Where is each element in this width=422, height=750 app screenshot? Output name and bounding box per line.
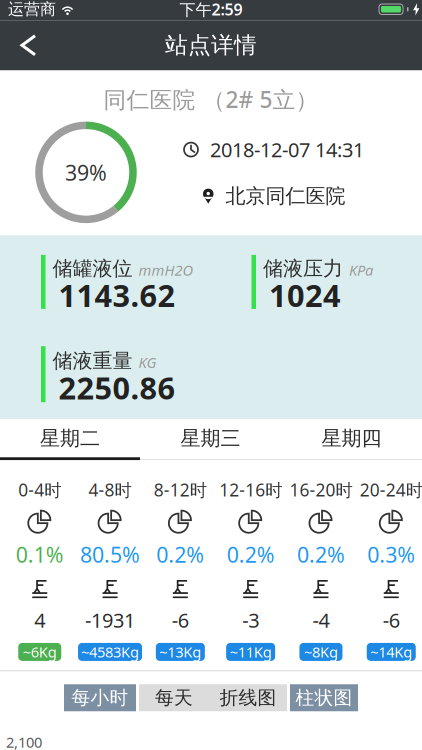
staticText: 星期四 <box>321 426 381 451</box>
staticText: -4 <box>312 607 329 633</box>
staticText: 80.5% <box>80 540 140 569</box>
staticText: 0.2% <box>297 540 345 569</box>
staticText: KG <box>138 353 156 372</box>
button[interactable]: 折线图 <box>209 684 287 711</box>
staticText: 16-20时 <box>289 478 352 501</box>
staticText: 20-24时 <box>360 478 422 501</box>
staticText: ~8Kg <box>304 642 338 662</box>
staticText: mmH2O <box>138 260 193 280</box>
staticText: 0.1% <box>16 540 64 569</box>
button[interactable]: 星期四 <box>281 419 422 457</box>
staticText: 2,100 <box>6 732 42 750</box>
staticText: 同仁医院 （2# 5立） <box>103 84 318 114</box>
staticText: 北京同仁医院 <box>225 184 345 208</box>
staticText: ~6Kg <box>23 642 57 662</box>
staticText: 运营商 <box>8 0 56 19</box>
staticText: 0.3% <box>367 540 415 569</box>
staticText: 站点详情 <box>165 31 257 59</box>
staticText: 0-4时 <box>18 478 61 501</box>
staticText: -1931 <box>85 607 135 633</box>
staticText: 1024 <box>269 275 341 315</box>
staticText: 1143.62 <box>58 275 175 315</box>
staticText: 储液重量 <box>52 349 132 373</box>
staticText: 0.2% <box>156 540 204 569</box>
button[interactable]: 柱状图 <box>290 684 358 711</box>
staticText: ~13Kg <box>159 642 201 662</box>
button[interactable]: 返回 <box>0 24 51 67</box>
button[interactable]: 星期二 <box>0 419 140 457</box>
staticText: -3 <box>242 607 259 633</box>
staticText: KPa <box>349 260 373 280</box>
staticText: 2250.86 <box>58 367 175 408</box>
button[interactable]: 每小时 <box>64 684 136 711</box>
staticText: 2018-12-07 14:31 <box>210 136 364 163</box>
staticText: -6 <box>383 607 400 633</box>
staticText: 39% <box>65 158 107 186</box>
staticText: ~4583Kg <box>81 642 139 662</box>
staticText: 储罐液位 <box>52 256 132 281</box>
staticText: 折线图 <box>219 686 276 709</box>
staticText: 每小时 <box>71 686 128 709</box>
staticText: 柱状图 <box>295 686 352 709</box>
staticText: 4-8时 <box>88 478 131 501</box>
button[interactable]: 星期三 <box>140 419 281 457</box>
staticText: 8-12时 <box>154 478 207 501</box>
staticText: 12-16时 <box>219 478 282 501</box>
staticText: 0.2% <box>227 540 275 569</box>
staticText: ~11Kg <box>230 642 272 662</box>
staticText: 星期二 <box>40 426 100 451</box>
staticText: 下午2:59 <box>179 0 242 20</box>
staticText: ~14Kg <box>370 642 412 662</box>
button[interactable]: 每天 <box>139 684 209 711</box>
staticText: 储液压力 <box>263 256 343 281</box>
staticText: 4 <box>34 607 45 633</box>
staticText: 每天 <box>155 686 193 709</box>
staticText: -6 <box>172 607 189 633</box>
staticText: 星期三 <box>180 426 240 451</box>
